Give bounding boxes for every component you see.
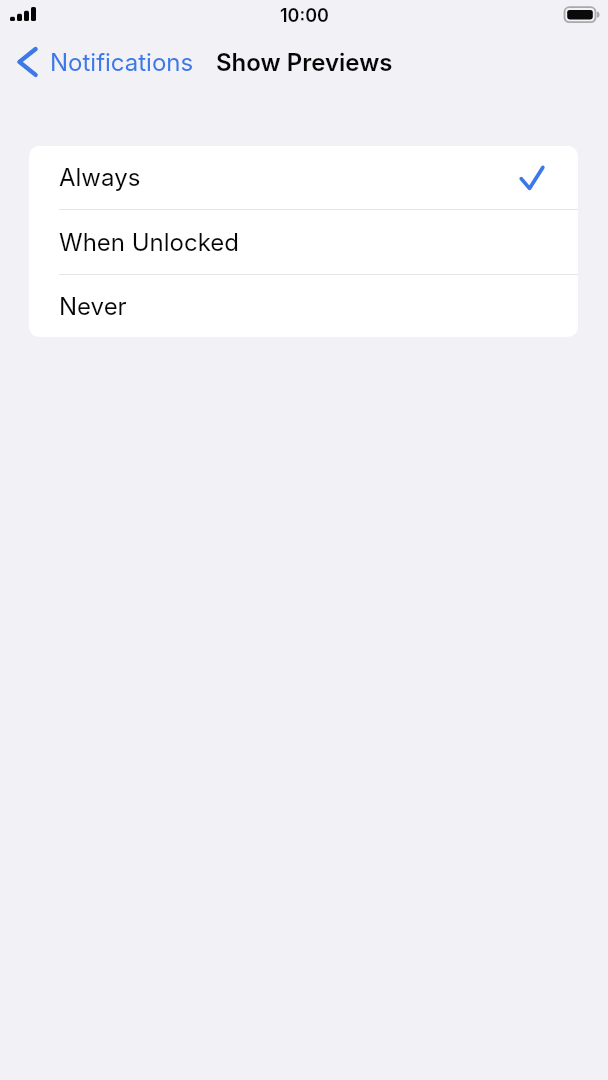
button[interactable]: Notifications <box>14 44 194 80</box>
staticText: 10:00 <box>280 5 329 27</box>
staticText: When Unlocked <box>59 228 240 257</box>
button[interactable]: When Unlocked <box>29 210 578 274</box>
staticText: Never <box>59 292 127 321</box>
staticText: Show Previews <box>216 48 393 77</box>
staticText: Always <box>59 163 141 192</box>
button[interactable]: Never <box>29 275 578 337</box>
staticText: Notifications <box>50 48 194 77</box>
button[interactable]: Always <box>29 146 578 209</box>
